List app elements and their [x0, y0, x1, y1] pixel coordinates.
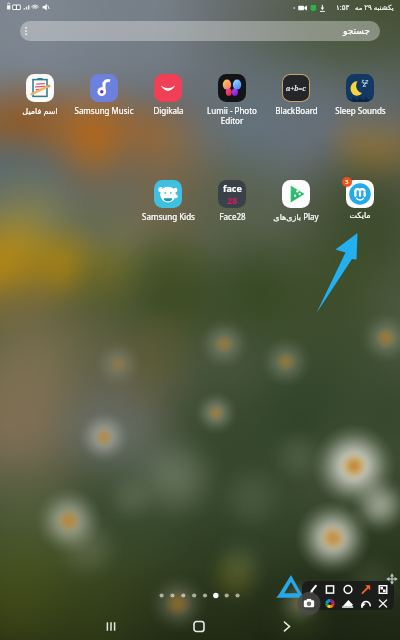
staticText: Lumii - Photo Editor [200, 105, 264, 124]
staticText: 3 [345, 178, 349, 186]
button[interactable]: 3 [328, 178, 392, 230]
staticText: BlackBoard [275, 105, 318, 116]
staticText: Samsung Music [74, 105, 134, 116]
staticText: Samsung Kids [142, 211, 195, 222]
button[interactable]: بازی‌های Play [264, 178, 328, 230]
staticText: 28 [227, 194, 238, 206]
staticText: face [223, 182, 242, 194]
staticText: ۱:۵۳ [336, 3, 350, 13]
staticText: Digikala [153, 105, 184, 116]
staticText: Sleep Sounds [335, 105, 386, 116]
button[interactable]: Recents [95, 612, 127, 640]
staticText: یکشنبه ۲۹ مه [355, 3, 394, 13]
button[interactable]: Digikala [136, 72, 200, 124]
button[interactable]: a+b=c [264, 72, 328, 124]
staticText: a+b=c [286, 83, 306, 93]
button[interactable]: اسم فامیل [8, 72, 72, 124]
button[interactable]: Lumii - Photo Editor [200, 72, 264, 124]
button[interactable]: Sleep Sounds [328, 72, 392, 124]
button[interactable]: Capture [298, 593, 320, 615]
button[interactable]: More options [20, 21, 34, 41]
staticText: مایکت [349, 211, 371, 220]
staticText: اسم فامیل [22, 105, 58, 116]
button[interactable]: Samsung Kids [136, 178, 200, 230]
button[interactable]: Back [271, 612, 303, 640]
button[interactable]: More options [20, 21, 380, 41]
staticText: جستجو [343, 26, 370, 36]
button[interactable]: Home [183, 612, 215, 640]
button[interactable]: Samsung Music [72, 72, 136, 124]
staticText: Face28 [219, 211, 246, 222]
button[interactable]: face [200, 178, 264, 230]
staticText: بازی‌های Play [273, 211, 319, 222]
